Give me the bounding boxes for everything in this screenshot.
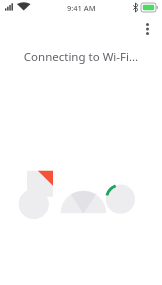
staticText: Connecting to Wi-Fi... — [12, 49, 150, 65]
button[interactable]: More options — [134, 16, 160, 42]
staticText: 9:41 AM — [67, 3, 96, 13]
